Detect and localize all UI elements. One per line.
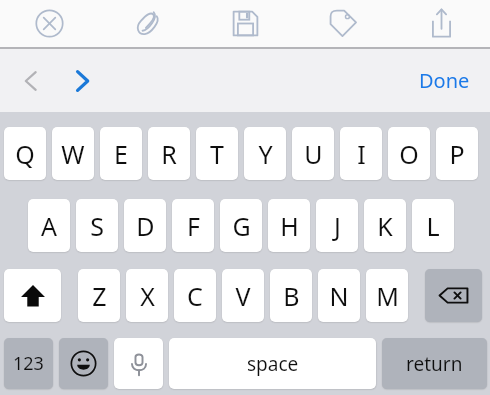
button[interactable]: N (318, 269, 360, 322)
button[interactable]: I (340, 127, 382, 180)
button[interactable]: Dictation (114, 338, 163, 389)
staticText: C (187, 279, 203, 313)
button[interactable]: Share (392, 0, 490, 47)
staticText: space (247, 351, 299, 377)
button[interactable]: M (366, 269, 408, 322)
button[interactable]: T (196, 127, 238, 180)
staticText: N (329, 279, 349, 313)
button[interactable]: space (169, 338, 376, 389)
staticText: M (376, 279, 399, 313)
staticText: 123 (13, 351, 44, 376)
button[interactable]: Emoji (59, 338, 108, 389)
button[interactable]: Next field (59, 58, 105, 104)
button[interactable]: E (100, 127, 142, 180)
staticText: return (406, 351, 463, 377)
staticText: G (232, 209, 251, 243)
staticText: R (161, 137, 177, 171)
button[interactable]: 123 (4, 338, 53, 389)
staticText: E (114, 137, 128, 171)
button[interactable]: P (436, 127, 478, 180)
staticText: D (136, 209, 155, 243)
button[interactable]: R (148, 127, 190, 180)
button[interactable]: F (172, 199, 214, 252)
staticText: X (140, 279, 155, 313)
button[interactable]: S (76, 199, 118, 252)
staticText: O (399, 137, 419, 171)
staticText: B (283, 279, 300, 313)
button[interactable]: W (52, 127, 94, 180)
button[interactable]: Tag (294, 0, 392, 47)
button[interactable]: Q (4, 127, 46, 180)
staticText: J (334, 209, 341, 243)
button[interactable]: D (124, 199, 166, 252)
button[interactable]: return (382, 338, 487, 389)
button[interactable]: G (220, 199, 262, 252)
staticText: T (210, 137, 224, 171)
staticText: Done (419, 67, 470, 94)
button[interactable]: Backspace (425, 269, 482, 322)
staticText: W (61, 137, 85, 171)
button[interactable]: Previous field (8, 58, 54, 104)
button[interactable]: A (28, 199, 70, 252)
staticText: L (426, 209, 440, 243)
button[interactable]: H (268, 199, 310, 252)
button[interactable]: Y (244, 127, 286, 180)
button[interactable]: V (222, 269, 264, 322)
button[interactable]: Z (78, 269, 120, 322)
staticText: Q (15, 137, 35, 171)
staticText: P (449, 137, 465, 171)
button[interactable]: Cancel (0, 0, 98, 47)
staticText: F (187, 209, 200, 243)
button[interactable]: Save (196, 0, 294, 47)
staticText: K (377, 209, 393, 243)
staticText: U (304, 137, 323, 171)
staticText: H (280, 209, 299, 243)
button[interactable]: K (364, 199, 406, 252)
button[interactable]: C (174, 269, 216, 322)
staticText: I (357, 137, 366, 171)
button[interactable]: Shift (4, 269, 61, 322)
button[interactable]: Attach file (98, 0, 196, 47)
button[interactable]: U (292, 127, 334, 180)
staticText: S (90, 209, 104, 243)
staticText: V (235, 279, 251, 313)
button[interactable]: Done (411, 59, 478, 102)
button[interactable]: O (388, 127, 430, 180)
staticText: Z (92, 279, 107, 313)
button[interactable]: J (316, 199, 358, 252)
button[interactable]: L (412, 199, 454, 252)
staticText: A (41, 209, 57, 243)
staticText: Y (258, 137, 273, 171)
button[interactable]: B (270, 269, 312, 322)
button[interactable]: X (126, 269, 168, 322)
